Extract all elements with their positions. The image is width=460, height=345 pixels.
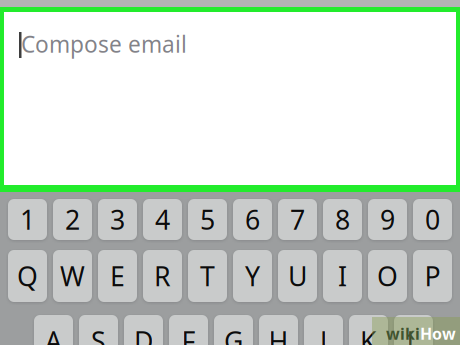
button[interactable]: Compose email [0,7,460,192]
button[interactable]: I [323,250,362,302]
button[interactable]: D [124,315,163,345]
staticText: How [420,323,456,344]
staticText: W [60,258,85,294]
staticText: I [338,258,347,294]
staticText: 1 [20,202,35,237]
button[interactable]: 3 [98,199,137,240]
staticText: 3 [110,202,125,237]
staticText: 0 [425,202,440,237]
staticText: K [360,323,377,345]
button[interactable]: 9 [368,199,407,240]
staticText: 4 [155,202,170,237]
staticText: G [224,323,243,345]
staticText: 9 [380,202,395,237]
staticText: H [268,323,288,345]
staticText: A [45,323,62,345]
button[interactable]: 4 [143,199,182,240]
button[interactable]: R [143,250,182,302]
button[interactable]: Y [233,250,272,302]
staticText: P [424,258,440,294]
button[interactable]: 8 [323,199,362,240]
staticText: 8 [335,202,350,237]
button[interactable]: E [98,250,137,302]
button[interactable]: A [34,315,73,345]
staticText: S [91,323,106,345]
button[interactable]: H [259,315,298,345]
button[interactable]: J [304,315,343,345]
button[interactable]: 2 [53,199,92,240]
button[interactable]: Q [8,250,47,302]
button[interactable]: F [169,315,208,345]
staticText: E [110,258,125,294]
staticText: L [406,323,420,345]
staticText: Q [17,258,38,294]
button[interactable]: L [394,315,433,345]
button[interactable]: 5 [188,199,227,240]
button[interactable]: W [53,250,92,302]
staticText: Y [245,258,260,294]
button[interactable]: S [79,315,118,345]
staticText: J [320,323,327,345]
button[interactable]: 6 [233,199,272,240]
staticText: T [200,258,215,294]
staticText: 7 [290,202,305,237]
staticText: Compose email [21,29,187,59]
button[interactable]: T [188,250,227,302]
staticText: 6 [245,202,260,237]
staticText: 5 [200,202,215,237]
button[interactable]: 1 [8,199,47,240]
button[interactable]: 0 [413,199,452,240]
button[interactable]: U [278,250,317,302]
staticText: O [377,258,398,294]
staticText: wiki [386,323,420,344]
button[interactable]: P [413,250,452,302]
button[interactable]: O [368,250,407,302]
button[interactable]: K [349,315,388,345]
staticText: D [134,323,153,345]
staticText: 2 [65,202,80,237]
staticText: F [181,323,195,345]
button[interactable]: 7 [278,199,317,240]
button[interactable]: G [214,315,253,345]
staticText: U [288,258,307,294]
staticText: R [154,258,171,294]
